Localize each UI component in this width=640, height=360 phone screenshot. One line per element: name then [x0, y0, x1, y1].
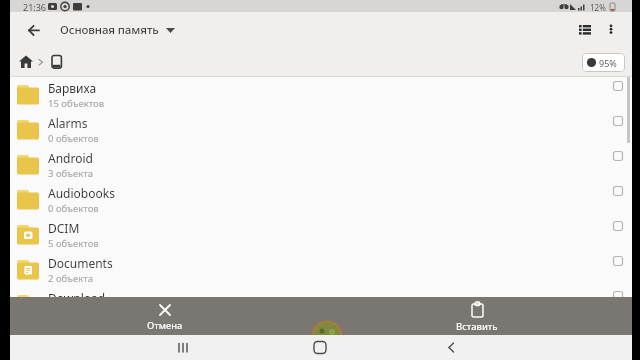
button[interactable] [20, 16, 48, 44]
staticText: 21:36 [23, 1, 47, 13]
staticText: DCIM [48, 220, 80, 236]
staticText: 95% [599, 57, 617, 69]
staticText: Alarms [48, 115, 88, 131]
button[interactable]: Audiobooks [10, 182, 632, 217]
button[interactable] [439, 335, 463, 360]
button[interactable] [604, 18, 628, 42]
button[interactable]: Основная память [60, 12, 169, 47]
button[interactable]: Барвиха [10, 77, 632, 112]
staticText: Основная память [60, 22, 159, 38]
staticText: 0 объектов [48, 132, 99, 145]
staticText: Android [48, 150, 93, 166]
staticText: Documents [48, 255, 113, 271]
button[interactable]: Вставить [437, 297, 517, 335]
staticText: Отмена [147, 319, 183, 332]
button[interactable] [582, 53, 625, 72]
staticText: 5 объектов [48, 237, 99, 250]
button[interactable] [573, 18, 597, 42]
button[interactable] [308, 335, 332, 360]
staticText: Вставить [456, 320, 498, 333]
staticText: 3 объекта [48, 167, 94, 180]
staticText: 0 объектов [48, 202, 99, 215]
button[interactable]: DCIM [10, 217, 632, 252]
button[interactable]: Alarms [10, 112, 632, 147]
staticText: 15 объектов [48, 97, 105, 110]
button[interactable] [171, 335, 195, 360]
staticText: 12% [590, 2, 606, 13]
button[interactable]: Documents [10, 252, 632, 287]
button[interactable]: Download [10, 287, 632, 322]
button[interactable]: Отмена [125, 297, 205, 335]
button[interactable]: Android [10, 147, 632, 182]
button[interactable] [16, 52, 36, 72]
staticText: Download [48, 290, 106, 306]
button[interactable] [48, 53, 66, 71]
staticText: Барвиха [48, 80, 97, 96]
staticText: 2 объекта [48, 272, 94, 285]
staticText: Audiobooks [48, 185, 115, 201]
